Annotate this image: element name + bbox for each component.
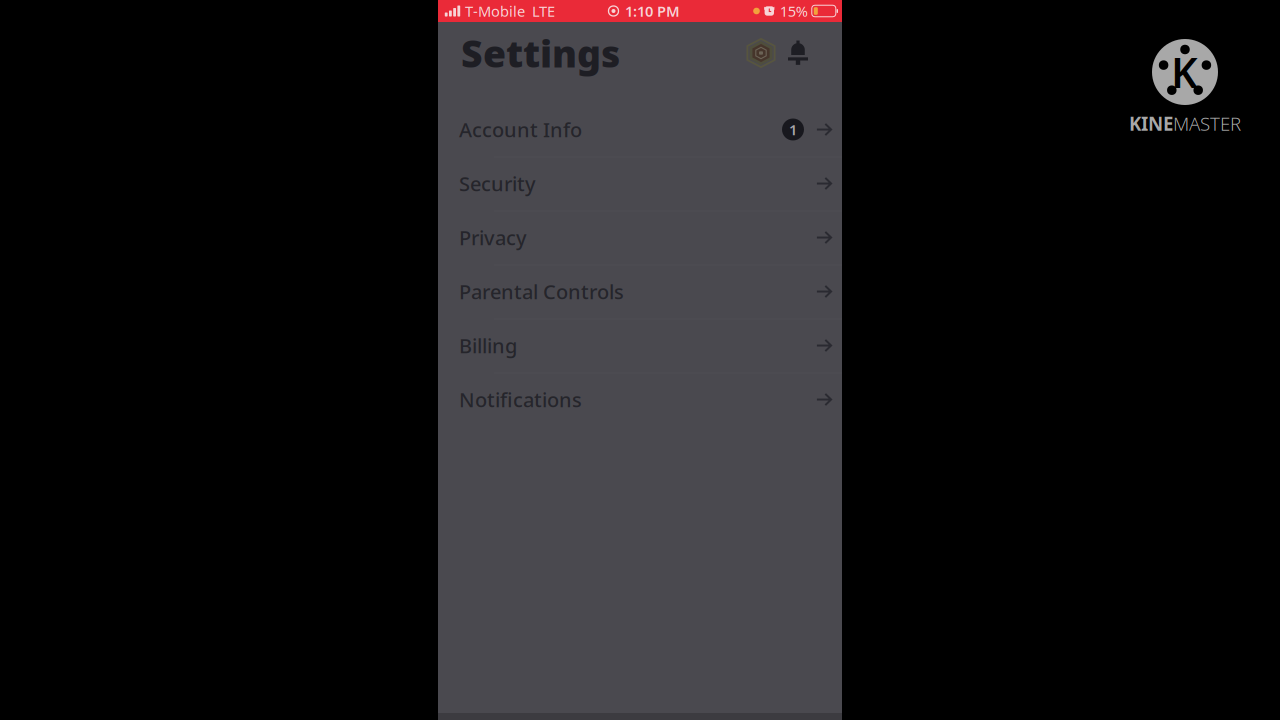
button[interactable]: Security <box>438 156 842 210</box>
staticText: KINE <box>1129 111 1173 136</box>
staticText: Account Info <box>459 116 582 143</box>
staticText: 1 <box>789 120 797 139</box>
button[interactable]: Membership badge <box>741 30 781 76</box>
staticText: Parental Controls <box>459 278 624 305</box>
staticText: T-Mobile <box>465 1 525 21</box>
staticText: Settings <box>461 28 620 78</box>
staticText: 1:10 PM <box>625 1 680 21</box>
button[interactable]: Notifications <box>438 372 842 426</box>
staticText: Billing <box>459 332 517 359</box>
button[interactable]: Notifications <box>781 30 815 76</box>
button[interactable]: Billing <box>438 318 842 372</box>
button[interactable]: Parental Controls <box>438 264 842 318</box>
staticText: Privacy <box>459 224 527 251</box>
staticText: MASTER <box>1173 111 1241 136</box>
button[interactable]: Privacy <box>438 210 842 264</box>
button[interactable]: Account Info <box>438 102 842 156</box>
staticText: K <box>1171 45 1198 99</box>
staticText: 15% <box>780 1 808 21</box>
staticText: LTE <box>532 1 555 21</box>
staticText: Security <box>459 170 536 197</box>
staticText: Notifications <box>459 386 582 413</box>
